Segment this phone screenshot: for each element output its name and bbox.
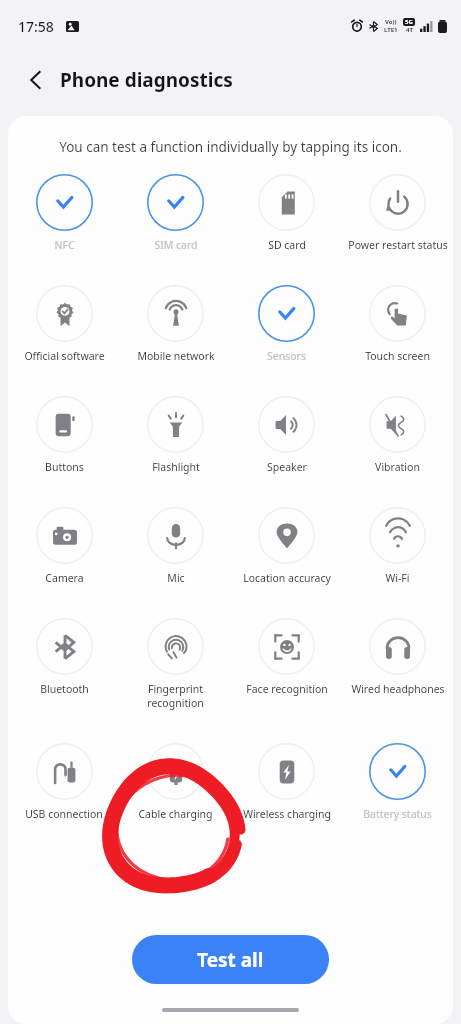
staticText: Location accuracy (243, 571, 331, 585)
staticText: Buttons (45, 460, 84, 474)
staticText: You can test a function individually by … (8, 138, 453, 156)
button[interactable]: Wired headphones (342, 616, 453, 698)
button[interactable]: Wireless charging (231, 741, 342, 823)
button[interactable]: Official software (8, 283, 120, 365)
staticText: Fingerprint recognition (120, 682, 231, 710)
staticText: Touch screen (365, 349, 430, 363)
button[interactable]: Buttons (8, 394, 120, 476)
staticText: Mic (167, 571, 185, 585)
staticText: Flashlight (152, 460, 200, 474)
button[interactable]: Mic (120, 505, 231, 587)
staticText: Battery status (363, 807, 432, 821)
staticText: Power restart status (348, 238, 448, 252)
staticText: USB connection (25, 807, 103, 821)
button[interactable]: NFC (8, 172, 120, 254)
staticText: Camera (45, 571, 84, 585)
button[interactable]: USB connection (8, 741, 120, 823)
staticText: SD card (268, 238, 306, 252)
button[interactable]: Speaker (231, 394, 342, 476)
button[interactable]: Cable charging (120, 741, 231, 823)
button[interactable]: Touch screen (342, 283, 453, 365)
button[interactable]: Test all (132, 935, 329, 984)
button[interactable]: Flashlight (120, 394, 231, 476)
staticText: 4T (406, 26, 413, 34)
button[interactable]: SIM card (120, 172, 231, 254)
staticText: Speaker (267, 460, 307, 474)
staticText: Wireless charging (243, 807, 331, 821)
staticText: Wi-Fi (385, 571, 410, 585)
staticText: Wired headphones (351, 682, 445, 696)
staticText: Phone diagnostics (60, 67, 233, 93)
button[interactable]: Sensors (231, 283, 342, 365)
button[interactable]: Face recognition (231, 616, 342, 698)
button[interactable]: Fingerprint recognition (120, 616, 231, 712)
button[interactable]: Camera (8, 505, 120, 587)
staticText: Test all (197, 947, 264, 973)
staticText: Vibration (375, 460, 420, 474)
staticText: Official software (24, 349, 105, 363)
staticText: Sensors (267, 349, 306, 363)
button[interactable]: SD card (231, 172, 342, 254)
staticText: SIM card (154, 238, 198, 252)
button[interactable]: Vibration (342, 394, 453, 476)
staticText: LTE1 (384, 26, 398, 34)
staticText: Cable charging (138, 807, 213, 821)
button[interactable]: Location accuracy (231, 505, 342, 587)
staticText: 17:58 (18, 17, 54, 36)
staticText: NFC (54, 238, 75, 252)
button[interactable]: Battery status (342, 741, 453, 823)
button[interactable]: Bluetooth (8, 616, 120, 698)
staticText: Mobile network (137, 349, 215, 363)
staticText: Bluetooth (40, 682, 89, 696)
button[interactable]: Power restart status (342, 172, 453, 254)
button[interactable]: Mobile network (120, 283, 231, 365)
button[interactable]: Back (14, 58, 58, 102)
staticText: Vo)) (385, 18, 397, 26)
staticText: 5G (405, 18, 413, 26)
staticText: Face recognition (246, 682, 328, 696)
button[interactable]: Wi-Fi (342, 505, 453, 587)
